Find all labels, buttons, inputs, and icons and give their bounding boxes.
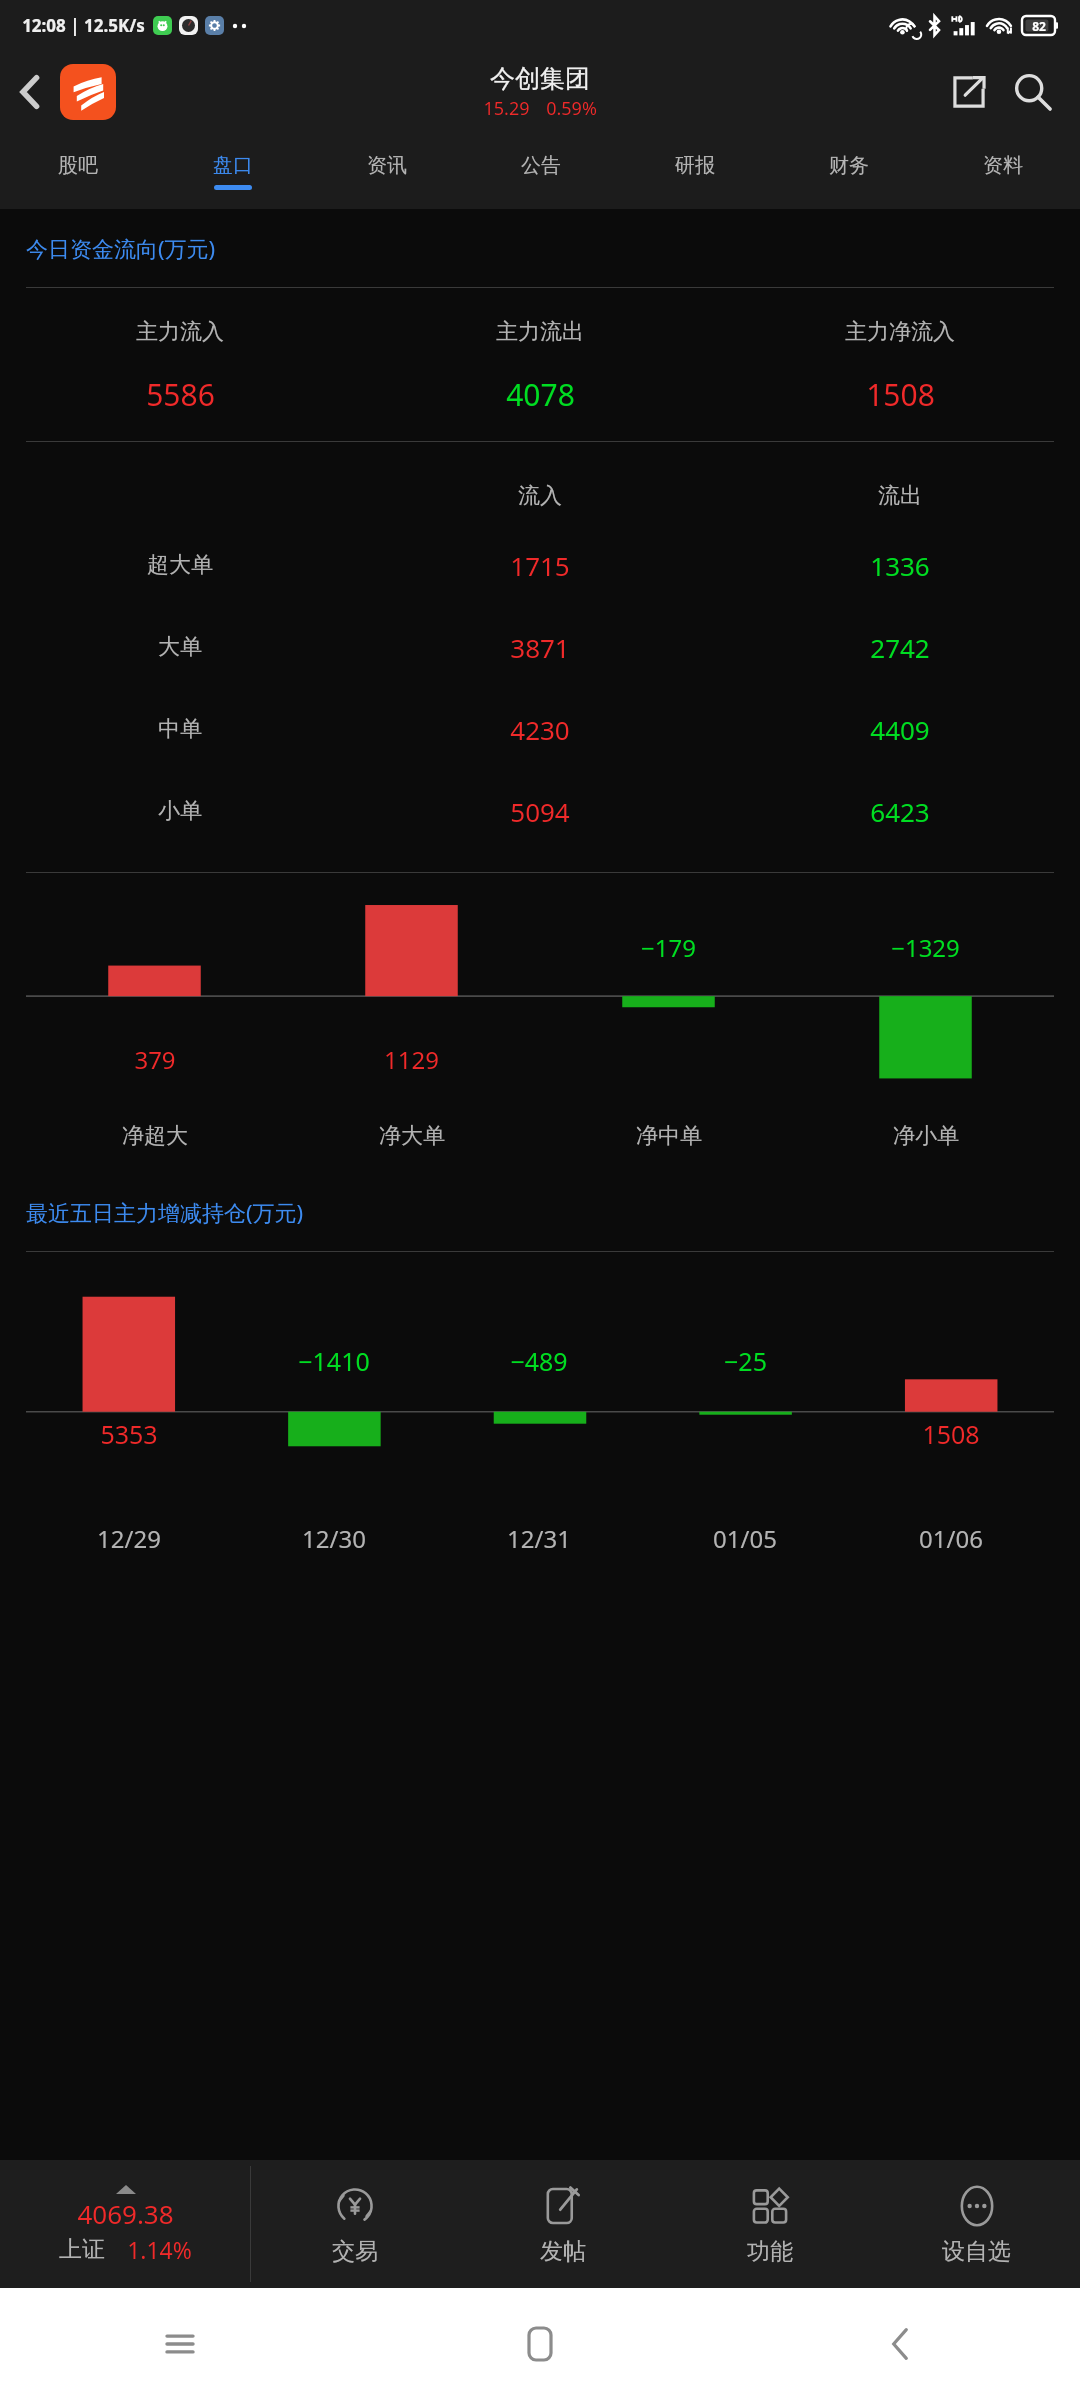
button[interactable]: 交易 [251,2160,459,2288]
button[interactable]: 设自选 [873,2160,1080,2288]
button[interactable]: 研报 [618,133,772,209]
button[interactable]: Recent apps [145,2309,215,2379]
staticText: 12/29 [97,1522,161,1555]
button[interactable]: 公告 [464,133,618,209]
staticText: 4078 [506,374,575,415]
staticText: −179 [641,931,696,964]
staticText: 01/06 [919,1522,983,1555]
staticText: 中单 [158,715,202,743]
button[interactable]: Home [505,2309,575,2379]
staticText: 12/31 [507,1522,571,1555]
staticText: 资讯 [367,153,407,178]
staticText: 交易 [332,2237,378,2266]
staticText: 流入 [518,482,562,510]
staticText: 资料 [983,153,1023,178]
staticText: 净小单 [893,1122,959,1150]
button[interactable]: Search [1000,59,1066,125]
staticText: 12:08 | 12.5K/s [22,14,145,37]
staticText: 净大单 [379,1122,445,1150]
staticText: 1508 [922,1417,980,1451]
staticText: 4230 [510,712,570,747]
button[interactable]: Share [938,61,1000,123]
staticText: −1410 [298,1344,370,1378]
staticText: 5586 [146,374,215,415]
staticText: 5353 [100,1417,158,1451]
button[interactable]: 盘口 [155,133,310,209]
staticText: 2742 [870,630,930,665]
staticText: 4409 [870,712,930,747]
staticText: 研报 [675,153,715,178]
staticText: 82 [1032,18,1046,34]
button[interactable]: 功能 [666,2160,873,2288]
staticText: 1508 [866,374,935,415]
staticText: 最近五日主力增减持仓(万元) [26,1197,304,1227]
staticText: 0.59% [546,96,597,121]
button[interactable]: 小单 [0,770,1080,852]
staticText: 379 [134,1043,176,1076]
staticText: 1336 [870,548,930,583]
staticText: 15.29 [483,96,530,121]
staticText: 设自选 [942,2237,1011,2266]
button[interactable]: 财务 [772,133,926,209]
button[interactable]: 资料 [926,133,1080,209]
staticText: 上证 [59,2235,105,2264]
staticText: 股吧 [58,153,98,178]
staticText: 1.14% [127,2234,192,2265]
staticText: −25 [724,1344,767,1378]
staticText: 大单 [158,633,202,661]
button[interactable]: Back [865,2309,935,2379]
staticText: 4069.38 [77,2196,174,2231]
button[interactable]: 中单 [0,688,1080,770]
staticText: 主力净流入 [845,318,955,346]
staticText: 01/05 [713,1522,777,1555]
staticText: 财务 [829,153,869,178]
button[interactable]: 资讯 [310,133,464,209]
staticText: 主力流入 [136,318,224,346]
staticText: 净中单 [636,1122,702,1150]
staticText: 今日资金流向(万元) [26,233,216,263]
button[interactable]: 超大单 [0,524,1080,606]
staticText: −1329 [891,931,960,964]
staticText: 功能 [747,2237,793,2266]
button[interactable]: 发帖 [459,2160,666,2288]
button[interactable]: App logo [60,64,116,120]
staticText: 超大单 [147,551,213,579]
staticText: −489 [510,1344,568,1378]
staticText: 公告 [521,153,561,178]
staticText: 5094 [510,794,570,829]
staticText: 今创集团 [490,63,590,94]
staticText: 小单 [158,797,202,825]
staticText: 3871 [510,630,570,665]
staticText: 1129 [384,1043,439,1076]
button[interactable]: Back [0,62,60,122]
staticText: 6423 [870,794,930,829]
button[interactable]: 大单 [0,606,1080,688]
staticText: 主力流出 [496,318,584,346]
staticText: 发帖 [540,2237,586,2266]
button[interactable]: 4069.38 [0,2160,250,2288]
staticText: 12/30 [302,1522,366,1555]
staticText: 1715 [510,548,570,583]
staticText: 净超大 [122,1122,188,1150]
button[interactable]: 股吧 [0,133,155,209]
staticText: 盘口 [213,153,253,178]
staticText: 流出 [878,482,922,510]
